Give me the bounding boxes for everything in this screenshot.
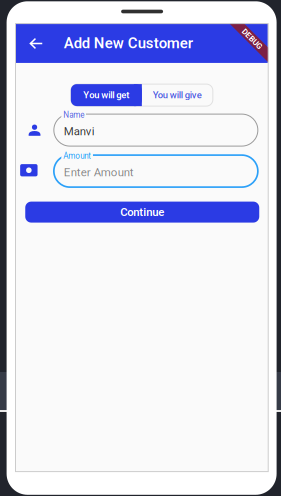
staticText: Name	[63, 110, 84, 120]
button[interactable]: Back	[23, 30, 49, 56]
staticText: DEBUG	[239, 34, 265, 44]
button[interactable]: You will give	[142, 84, 213, 106]
staticText: Add New Customer	[64, 34, 193, 52]
staticText: Continue	[120, 205, 164, 219]
button[interactable]: Continue	[25, 202, 259, 223]
staticText: You will get	[83, 90, 129, 101]
staticText: Manvi	[64, 125, 95, 138]
staticText: Amount	[63, 151, 91, 161]
staticText: Enter Amount	[64, 166, 134, 179]
staticText: You will give	[153, 90, 202, 101]
button[interactable]: You will get	[71, 84, 142, 106]
